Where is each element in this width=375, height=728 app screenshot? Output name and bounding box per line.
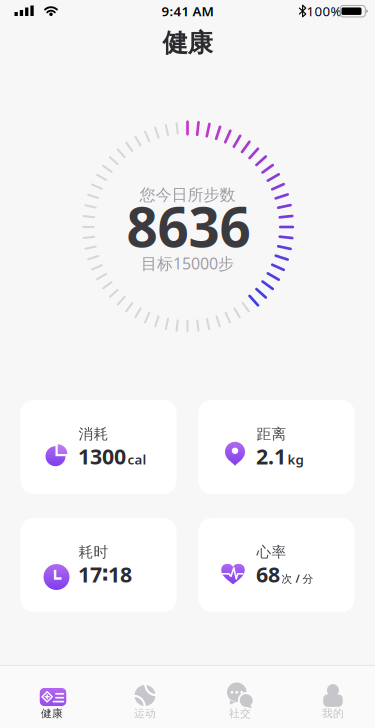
staticText: 8636 bbox=[126, 190, 250, 262]
staticText: 2.1 bbox=[256, 442, 286, 470]
staticText: 社交 bbox=[229, 707, 251, 720]
staticText: 健康 bbox=[41, 707, 63, 720]
staticText: cal bbox=[127, 451, 146, 468]
staticText: 距离 bbox=[256, 425, 286, 443]
staticText: 耗时 bbox=[78, 543, 108, 561]
staticText: 17∶18 bbox=[78, 560, 132, 588]
staticText: 目标15000步 bbox=[141, 253, 234, 274]
staticText: 健康 bbox=[162, 27, 212, 58]
staticText: 消耗 bbox=[78, 425, 108, 443]
staticText: 次 / 分 bbox=[281, 571, 313, 586]
staticText: 68 bbox=[256, 560, 280, 588]
staticText: 心率 bbox=[256, 543, 286, 561]
staticText: 我的 bbox=[322, 707, 344, 720]
staticText: 1300 bbox=[78, 442, 126, 470]
staticText: 9:41 AM bbox=[161, 2, 213, 20]
staticText: 100% bbox=[306, 2, 341, 20]
staticText: 运动 bbox=[134, 707, 156, 720]
staticText: 您今日所步数 bbox=[139, 185, 235, 205]
staticText: kg bbox=[287, 451, 303, 468]
